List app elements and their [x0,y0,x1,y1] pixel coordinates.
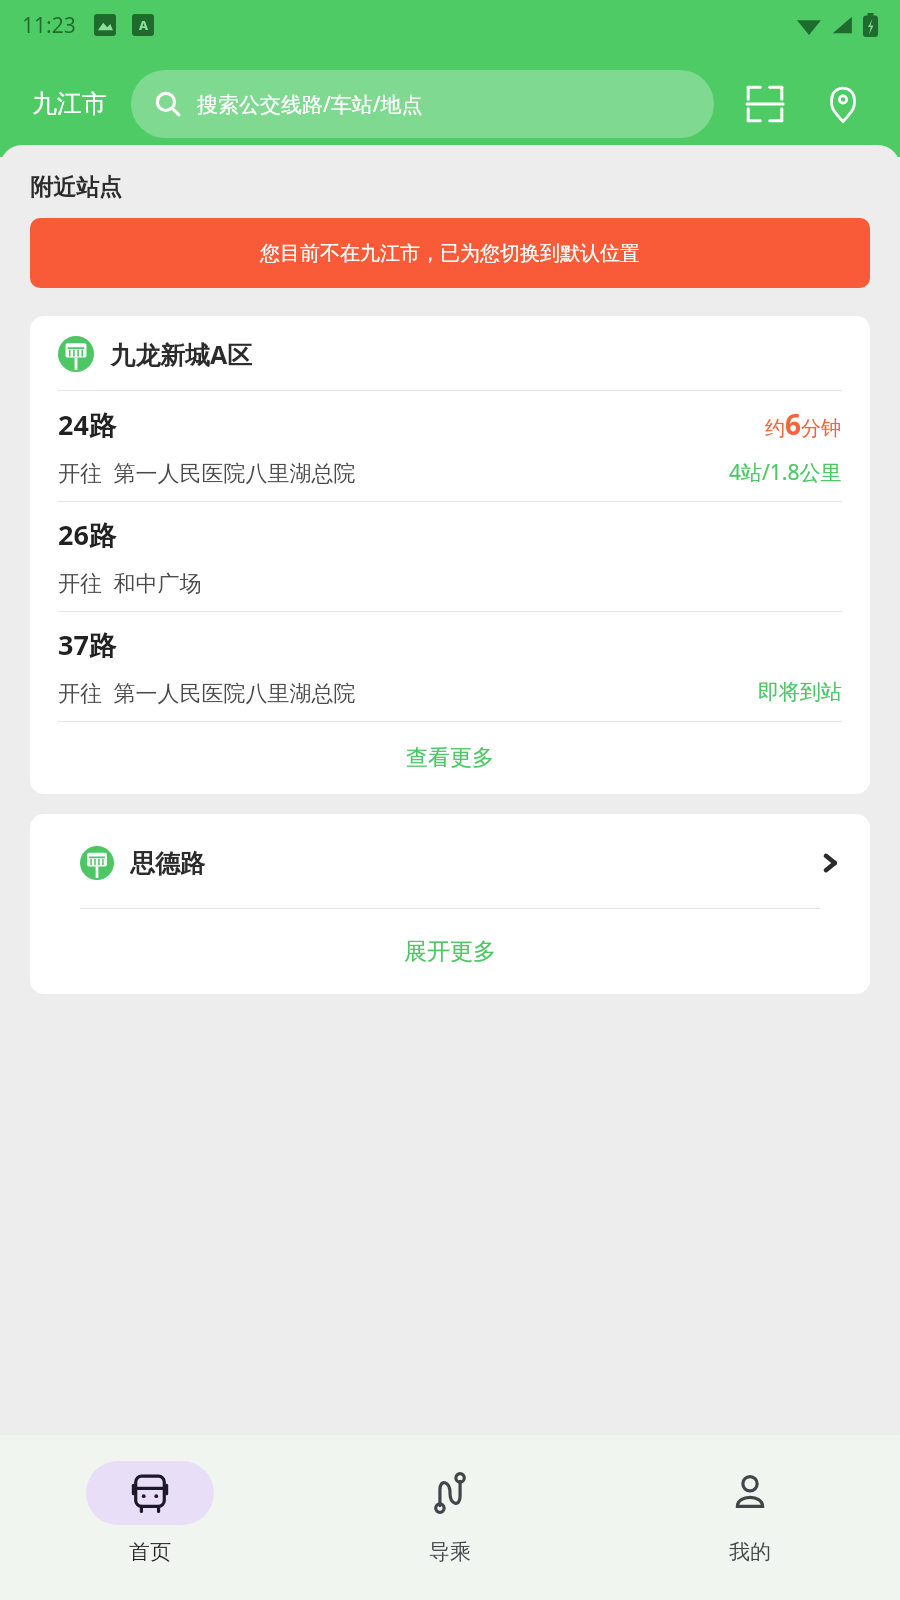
staticText: 24路 [58,406,116,443]
staticText: 搜索公交线路/车站/地点 [197,90,423,119]
staticText: A [139,16,148,34]
staticText: 首页 [129,1539,171,1565]
button[interactable]: 九江市 [32,88,107,119]
button[interactable]: 26路 [58,502,842,611]
staticText: 附近站点 [30,173,122,202]
staticText: 4站/1.8公里 [729,458,842,487]
staticText: 您目前不在九江市，已为您切换到默认位置 [260,241,640,266]
staticText: 26路 [58,516,116,553]
button[interactable]: 九龙新城A区 [58,316,842,390]
staticText: 九龙新城A区 [110,337,253,371]
staticText: 11:23 [22,11,76,40]
staticText: 查看更多 [406,744,494,772]
staticText: 展开更多 [404,937,496,966]
button[interactable]: 扫一扫 [740,79,790,129]
button[interactable]: 24路 [58,391,842,501]
staticText: 思德路 [130,848,205,879]
button[interactable]: 思德路 [58,814,842,908]
button[interactable]: 搜索公交线路/车站/地点 [131,70,714,138]
staticText: 我的 [729,1539,771,1565]
staticText: 开往 第一人民医院八里湖总院 [58,677,356,707]
staticText: 开往 和中广场 [58,567,202,597]
button[interactable]: 37路 [58,612,842,721]
button[interactable]: 定位 [818,79,868,129]
button[interactable]: 我的 [600,1435,900,1600]
staticText: 即将到站 [758,679,842,705]
button[interactable]: 查看更多 [58,722,842,794]
button[interactable]: 首页 [0,1435,300,1600]
button[interactable]: 导乘 [300,1435,600,1600]
staticText: 导乘 [429,1539,471,1565]
staticText: 约6分钟 [765,405,842,443]
button[interactable]: 展开更多 [58,909,842,994]
staticText: 37路 [58,626,116,663]
button[interactable]: 您目前不在九江市，已为您切换到默认位置 [30,218,870,288]
staticText: 开往 第一人民医院八里湖总院 [58,457,356,487]
